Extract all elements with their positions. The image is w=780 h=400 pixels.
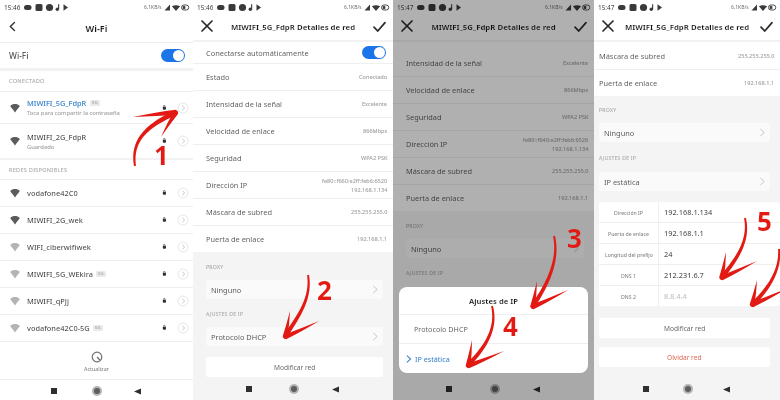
button[interactable]: Close — [395, 14, 419, 38]
button[interactable]: Recents — [44, 381, 64, 400]
button[interactable]: Protocolo DHCP — [206, 327, 383, 346]
button[interactable]: Save — [568, 15, 592, 39]
button[interactable]: Home — [284, 379, 304, 399]
button[interactable]: Recents — [439, 379, 459, 399]
button[interactable]: Toggle Wi-Fi — [362, 46, 386, 59]
button[interactable]: Estado — [193, 64, 393, 90]
button[interactable]: vodafone42C0 — [0, 180, 193, 206]
button[interactable]: vodafone42C0-5G — [0, 315, 193, 341]
button[interactable]: IP estática — [399, 344, 588, 373]
staticText: Excelente — [362, 100, 388, 108]
button[interactable]: Intensidad de la señal — [193, 91, 393, 117]
button[interactable]: Back — [127, 381, 147, 400]
button[interactable]: Máscara de subred — [193, 199, 393, 225]
staticText: MIWIFI_2G_wek — [27, 215, 83, 225]
button[interactable]: Save — [754, 15, 778, 39]
staticText: CONECTADO — [9, 77, 45, 85]
staticText: AJUSTES DE IP — [406, 269, 444, 276]
button[interactable]: Recents — [636, 379, 656, 399]
button[interactable]: Home — [87, 381, 107, 400]
staticText: Actualizar — [84, 365, 109, 372]
staticText: 1 — [154, 137, 169, 172]
button[interactable]: Back — [0, 14, 24, 38]
button[interactable]: Seguridad — [193, 145, 393, 171]
button[interactable]: Back — [325, 379, 345, 399]
button[interactable]: Conectarse automáticamente — [193, 42, 393, 63]
button[interactable]: Protocolo DHCP — [399, 315, 588, 343]
button[interactable]: Ninguno — [599, 123, 770, 142]
staticText: 2 — [317, 272, 332, 307]
button[interactable]: Seguridad — [393, 104, 594, 130]
staticText: Protocolo DHCP — [211, 332, 267, 342]
button[interactable]: Máscara de subred — [393, 158, 594, 184]
staticText: 5G — [92, 100, 98, 106]
staticText: 255.255.255.0 — [351, 208, 388, 216]
button[interactable]: Modificar red — [206, 357, 383, 377]
staticText: IP estática — [415, 354, 450, 364]
staticText: Dirección IP — [206, 180, 248, 190]
button[interactable]: Actualizar — [0, 342, 193, 379]
button[interactable]: Toggle Wi-Fi — [161, 49, 185, 62]
button[interactable]: Wi-Fi — [0, 43, 193, 68]
staticText: Wi-Fi — [9, 50, 29, 61]
staticText: vodafone42C0-5G — [27, 323, 90, 333]
staticText: 24 — [664, 249, 673, 259]
button[interactable]: WIFI_ciberwifiwek — [0, 234, 193, 260]
staticText: 6,1KB/s — [731, 4, 749, 11]
button[interactable]: Close — [195, 14, 219, 38]
staticText: MIWIFI_5G_FdpR Detalles de red — [193, 22, 393, 33]
button[interactable]: Intensidad de la señal — [393, 50, 594, 76]
button[interactable]: Recents — [239, 379, 259, 399]
staticText: Dirección IP — [614, 209, 643, 216]
button[interactable]: Longitud del prefijo — [599, 244, 780, 264]
staticText: Seguridad — [406, 112, 442, 122]
button[interactable]: Home — [678, 379, 698, 399]
button[interactable]: IP estática — [599, 172, 770, 191]
staticText: 866Mbps — [363, 127, 388, 135]
staticText: MIWIFI_5G_FdpR Detalles de red — [594, 22, 780, 33]
button[interactable]: Puerta de enlace — [599, 223, 780, 243]
staticText: 5 — [757, 203, 772, 238]
staticText: 6,1KB/s — [344, 4, 362, 11]
staticText: Guardado — [27, 143, 55, 151]
button[interactable]: Save — [367, 15, 391, 39]
button[interactable]: MIWIFI_5G_FdpR — [0, 92, 193, 123]
button[interactable]: Puerta de enlace — [193, 226, 393, 252]
staticText: Excelente — [563, 59, 589, 67]
button[interactable]: Close — [596, 14, 620, 38]
button[interactable]: Puerta de enlace — [594, 70, 780, 96]
button[interactable]: MIWIFI_2G_FdpR — [0, 124, 193, 158]
button[interactable]: Back — [716, 379, 736, 399]
staticText: 15:46 — [197, 3, 214, 12]
button[interactable]: Velocidad de enlace — [193, 118, 393, 144]
button[interactable]: MIWIFI_2G_wek — [0, 207, 193, 233]
button[interactable]: DNS 1 — [599, 265, 780, 285]
button[interactable]: MIWIFI_5G_WEkira — [0, 261, 193, 287]
staticText: Toca para compartir la contraseña — [27, 109, 120, 117]
staticText: 192.168.1.1 — [357, 235, 388, 243]
staticText: 5G — [98, 271, 104, 277]
button[interactable]: Máscara de subred — [594, 42, 780, 69]
staticText: Ninguno — [211, 285, 242, 295]
button[interactable]: Velocidad de enlace — [393, 77, 594, 103]
button[interactable]: Home — [485, 379, 505, 399]
button[interactable]: Olvidar red — [599, 347, 770, 367]
button[interactable]: Dirección IP — [193, 172, 393, 198]
button[interactable]: MIWIFI_qPJj — [0, 288, 193, 314]
button[interactable]: Puerta de enlace — [393, 185, 594, 211]
staticText: 15:47 — [598, 3, 615, 12]
staticText: Máscara de subred — [599, 51, 665, 61]
staticText: 15:47 — [397, 3, 414, 12]
button[interactable]: Back — [526, 379, 546, 399]
button[interactable]: DNS 2 — [599, 286, 780, 306]
staticText: Velocidad de enlace — [406, 85, 475, 95]
button[interactable]: Ninguno — [206, 280, 383, 299]
button[interactable]: Dirección IP — [393, 131, 594, 157]
staticText: 212.231.6.7 — [664, 270, 704, 280]
button[interactable]: Ninguno — [406, 239, 584, 258]
staticText: Modificar red — [664, 324, 706, 333]
button[interactable]: Dirección IP — [599, 202, 780, 222]
staticText: Puerta de enlace — [406, 193, 465, 203]
staticText: Intensidad de la señal — [406, 58, 483, 68]
button[interactable]: Modificar red — [599, 318, 770, 338]
